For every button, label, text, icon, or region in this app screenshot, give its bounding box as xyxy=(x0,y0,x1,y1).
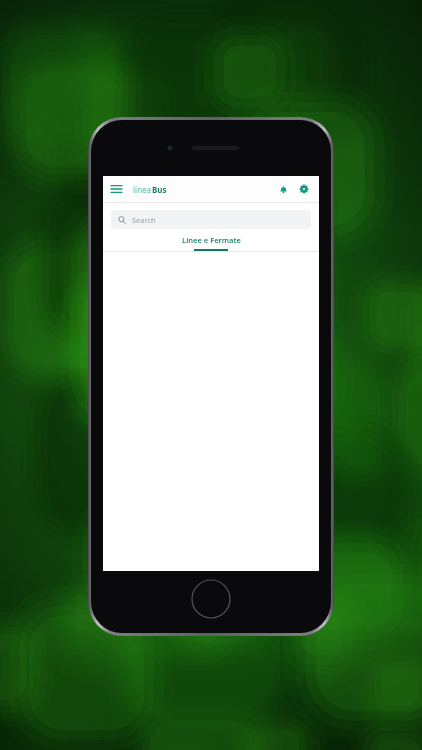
button[interactable]: Notifications xyxy=(273,179,293,199)
staticText: Search xyxy=(132,215,156,225)
button[interactable]: Menu xyxy=(103,176,129,202)
button[interactable]: Linee e Fermate xyxy=(103,235,319,251)
staticText: linea xyxy=(133,184,152,195)
button[interactable]: Search xyxy=(111,210,311,229)
staticText: Bus xyxy=(152,184,167,195)
staticText: Linee e Fermate xyxy=(182,235,241,245)
button[interactable]: Settings xyxy=(294,179,314,199)
